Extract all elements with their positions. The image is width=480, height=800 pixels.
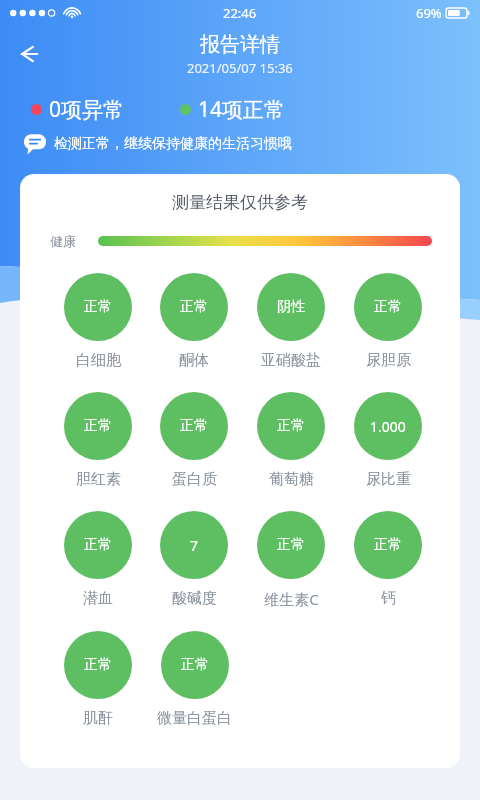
button[interactable]: 正常 [160, 273, 228, 370]
staticText: 报告详情 [200, 32, 280, 57]
button[interactable]: 正常 [64, 631, 132, 728]
staticText: 正常 [84, 298, 112, 316]
staticText: 1.000 [370, 417, 406, 436]
button[interactable]: 阴性 [257, 273, 325, 370]
staticText: 正常 [84, 656, 112, 674]
staticText: 检测正常，继续保持健康的生活习惯哦 [54, 135, 292, 153]
button[interactable]: 正常 [160, 392, 228, 489]
staticText: 测量结果仅供参考 [20, 192, 460, 213]
button[interactable]: 正常 [157, 631, 232, 728]
staticText: 白细胞 [76, 351, 121, 370]
staticText: 肌酐 [83, 709, 113, 728]
staticText: 胆红素 [76, 470, 121, 489]
staticText: 酸碱度 [172, 589, 217, 608]
staticText: 正常 [180, 417, 208, 435]
button[interactable]: 正常 [354, 511, 422, 608]
staticText: 蛋白质 [172, 470, 217, 489]
button[interactable]: 1.000 [354, 392, 422, 489]
staticText: 钙 [381, 589, 396, 608]
staticText: 潜血 [83, 589, 113, 608]
button[interactable]: 正常 [64, 511, 132, 608]
staticText: 正常 [181, 656, 209, 674]
staticText: 维生素C [264, 589, 319, 609]
staticText: 69% [416, 4, 442, 22]
staticText: 微量白蛋白 [157, 709, 232, 728]
staticText: 2021/05/07 15:36 [187, 59, 293, 77]
staticText: 正常 [277, 536, 305, 554]
button[interactable]: Back [6, 30, 54, 78]
staticText: 7 [190, 536, 199, 555]
staticText: 正常 [277, 417, 305, 435]
staticText: 正常 [84, 536, 112, 554]
button[interactable]: 正常 [64, 392, 132, 489]
staticText: 尿比重 [366, 470, 411, 489]
staticText: 22:46 [223, 4, 257, 22]
staticText: 正常 [374, 536, 402, 554]
staticText: 葡萄糖 [269, 470, 314, 489]
staticText: 尿胆原 [366, 351, 411, 370]
staticText: 酮体 [179, 351, 209, 370]
staticText: 健康 [50, 233, 76, 249]
staticText: 正常 [84, 417, 112, 435]
button[interactable]: 正常 [64, 273, 132, 370]
staticText: 亚硝酸盐 [261, 351, 321, 370]
staticText: 0项异常 [49, 95, 125, 124]
button[interactable]: 正常 [257, 392, 325, 489]
staticText: 14项正常 [198, 95, 286, 124]
staticText: 阴性 [277, 298, 305, 316]
staticText: 正常 [374, 298, 402, 316]
staticText: 正常 [180, 298, 208, 316]
button[interactable]: 正常 [354, 273, 422, 370]
button[interactable]: 正常 [257, 511, 325, 609]
button[interactable]: 7 [160, 511, 228, 608]
